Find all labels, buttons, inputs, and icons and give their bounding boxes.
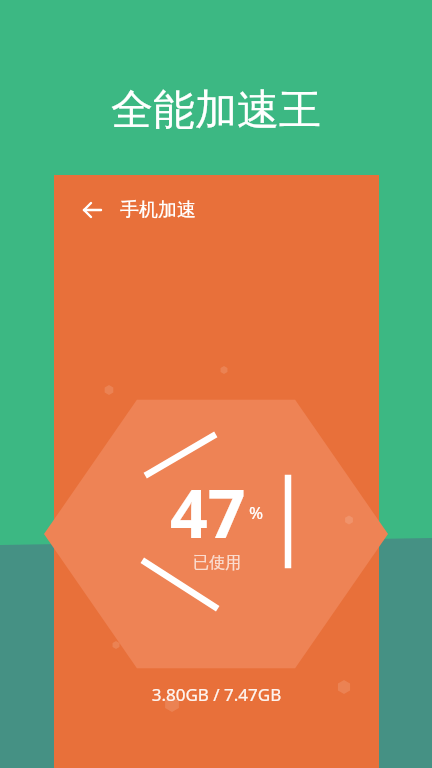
staticText: 已使用 [193, 553, 241, 573]
staticText: 47 [170, 467, 246, 557]
staticText: 手机加速 [120, 198, 196, 222]
staticText: % [249, 501, 264, 524]
staticText: 3.80GB / 7.47GB [54, 683, 379, 706]
button[interactable]: Back [72, 190, 112, 230]
staticText: 全能加速王 [0, 84, 432, 768]
